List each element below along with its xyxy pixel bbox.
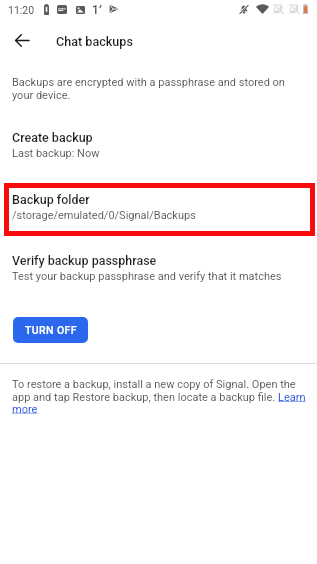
button[interactable]: Learn more: [277, 391, 306, 403]
staticText: Backup folder: [12, 192, 90, 207]
staticText: Test your backup passphrase and verify t…: [12, 270, 282, 283]
button[interactable]: Verify backup passphrase: [0, 244, 317, 292]
button[interactable]: Create backup: [0, 121, 317, 169]
staticText: Chat backups: [56, 34, 133, 49]
button[interactable]: Back: [11, 31, 32, 50]
staticText: Last backup: Now: [12, 147, 100, 160]
staticText: To restore a backup, install a new copy …: [12, 378, 306, 415]
button[interactable]: Learn more: [12, 404, 37, 416]
staticText: Verify backup passphrase: [12, 253, 157, 268]
staticText: 1: [92, 3, 99, 17]
staticText: /storage/emulated/0/Signal/Backups: [12, 209, 196, 222]
button[interactable]: Backup folder: [0, 183, 317, 231]
button[interactable]: TURN OFF: [13, 317, 88, 343]
staticText: TURN OFF: [25, 324, 77, 336]
staticText: 11:20: [8, 4, 35, 16]
staticText: Create backup: [12, 130, 93, 145]
staticText: Backups are encrypted with a passphrase …: [12, 76, 287, 101]
